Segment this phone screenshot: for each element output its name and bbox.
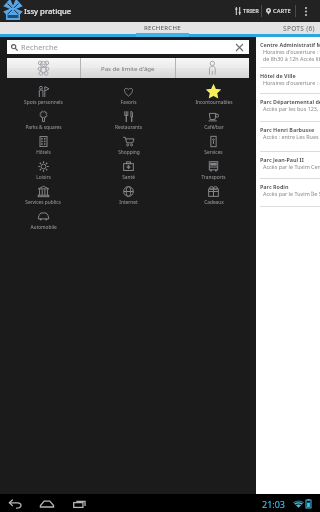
button[interactable]: Services: [171, 135, 256, 160]
staticText: Restaurants: [115, 124, 142, 131]
staticText: Services: [204, 149, 223, 156]
button[interactable]: Transports: [171, 160, 256, 185]
button[interactable]: Pas de limite d'âge: [81, 58, 175, 78]
button[interactable]: Santé: [86, 160, 171, 185]
button[interactable]: Automobile: [0, 210, 86, 235]
staticText: Café/bar: [204, 124, 224, 131]
staticText: Services publics: [25, 199, 61, 206]
button[interactable]: RECHERCHE: [135, 22, 189, 34]
button[interactable]: Shopping: [86, 135, 171, 160]
button[interactable]: Parc Départemental de l'Île: [256, 94, 320, 122]
other: Clear: [236, 44, 243, 51]
staticText: Automobile: [30, 224, 57, 231]
staticText: SPOTS (6): [283, 24, 315, 33]
staticText: TRIER: [243, 7, 259, 15]
staticText: Parc Jean-Paul II: [260, 156, 304, 163]
staticText: Favoris: [120, 99, 137, 106]
button[interactable]: CARTE: [266, 0, 292, 22]
button[interactable]: Centre Administratif Municipal: [256, 37, 320, 68]
staticText: Cadeaux: [204, 199, 224, 206]
button[interactable]: Home: [35, 494, 59, 512]
button[interactable]: More options: [298, 0, 314, 22]
button[interactable]: Incontournables: [171, 85, 256, 110]
staticText: Hôtels: [36, 149, 51, 156]
staticText: Internet: [119, 199, 138, 206]
button[interactable]: Spots personnels: [0, 85, 86, 110]
button[interactable]: Hôtel de Ville: [256, 68, 320, 94]
button[interactable]: [176, 58, 249, 78]
button[interactable]: Favoris: [86, 85, 171, 110]
button[interactable]: TRIER: [235, 0, 259, 22]
button[interactable]: Parc Jean-Paul II: [256, 152, 320, 179]
staticText: 21:03: [262, 498, 286, 510]
button[interactable]: [7, 58, 80, 78]
staticText: Accès par le Tuvim Île Sain: [263, 190, 320, 197]
staticText: Shopping: [118, 149, 140, 156]
staticText: de 8h30 à 12h Accès libre: [263, 55, 320, 62]
staticText: Hôtel de Ville: [260, 72, 296, 79]
staticText: Parc Rodin: [260, 183, 289, 190]
staticText: Incontournables: [195, 99, 233, 106]
staticText: Pas de limite d'âge: [101, 64, 155, 72]
button[interactable]: Loisirs: [0, 160, 86, 185]
staticText: RECHERCHE: [144, 24, 181, 32]
button[interactable]: Back: [3, 494, 27, 512]
staticText: Loisirs: [36, 174, 51, 181]
button[interactable]: Café/bar: [171, 110, 256, 135]
staticText: Horaires d'ouverture : lundi: [263, 48, 320, 55]
button[interactable]: Parks & squares: [0, 110, 86, 135]
button[interactable]: Recents: [68, 494, 92, 512]
staticText: Parc Henri Barbusse: [260, 126, 315, 133]
staticText: Issy pratique: [24, 6, 72, 17]
button[interactable]: Recherche: [7, 40, 249, 54]
staticText: CARTE: [273, 7, 291, 15]
staticText: Transports: [201, 174, 226, 181]
staticText: Parc Départemental de l'Île: [260, 98, 320, 105]
button[interactable]: Parc Rodin: [256, 179, 320, 207]
staticText: Santé: [122, 174, 135, 181]
other: Issy: [5, 2, 21, 20]
staticText: Accès par le Tuvim Centre: [263, 163, 320, 170]
staticText: Parks & squares: [25, 124, 62, 131]
staticText: Recherche: [21, 42, 58, 52]
button[interactable]: Services publics: [0, 185, 86, 210]
button[interactable]: Restaurants: [86, 110, 171, 135]
staticText: Centre Administratif Municipal: [260, 41, 320, 48]
staticText: Accès par les bus 123, 26: [263, 105, 320, 112]
staticText: Spots personnels: [24, 99, 63, 106]
button[interactable]: Hôtels: [0, 135, 86, 160]
staticText: Horaires d'ouverture : du lun: [263, 79, 320, 86]
staticText: Accès : entre Les Rues Henri: [263, 133, 320, 140]
button[interactable]: Internet: [86, 185, 171, 210]
button[interactable]: Cadeaux: [171, 185, 256, 210]
button[interactable]: Parc Henri Barbusse: [256, 122, 320, 152]
